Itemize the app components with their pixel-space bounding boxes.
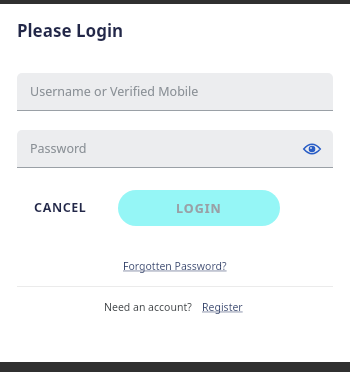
button[interactable]: LOGIN [118,190,280,226]
button[interactable]: Register [199,298,246,316]
button[interactable]: CANCEL [17,189,104,226]
staticText: Username or Verified Mobile [30,83,321,100]
button[interactable]: Forgotten Password? [117,257,233,275]
staticText: Please Login [17,19,124,42]
button[interactable]: Password [17,130,333,167]
other: Show password [303,140,321,158]
staticText: LOGIN [176,200,222,217]
staticText: CANCEL [34,199,87,216]
button[interactable]: Username or Verified Mobile [17,73,333,110]
staticText: Need an account? [104,300,192,314]
staticText: Forgotten Password? [123,259,227,273]
staticText: Password [30,140,303,157]
staticText: Register [202,300,243,314]
